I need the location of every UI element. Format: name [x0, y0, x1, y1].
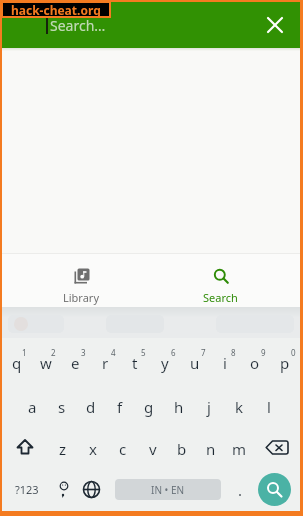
staticText: u	[190, 353, 200, 373]
button[interactable]: ?123	[2, 468, 51, 511]
button[interactable]: Search	[146, 254, 295, 307]
staticText: hack-cheat.org	[11, 2, 101, 18]
staticText: q	[12, 353, 22, 373]
staticText: 8	[231, 347, 236, 358]
staticText: l	[267, 397, 271, 417]
button[interactable]	[51, 468, 77, 511]
staticText: z	[59, 439, 67, 459]
button[interactable]: j	[194, 384, 224, 426]
staticText: f	[117, 397, 123, 417]
staticText: .	[238, 480, 243, 500]
staticText: n	[206, 439, 216, 459]
staticText: 7	[201, 347, 206, 358]
staticText: Library	[63, 290, 100, 305]
button[interactable]	[254, 426, 300, 468]
button[interactable]: s	[47, 384, 76, 426]
button[interactable]	[258, 473, 291, 506]
button[interactable]: n	[196, 426, 225, 468]
button[interactable]	[77, 468, 105, 511]
staticText: w	[40, 353, 52, 373]
staticText: k	[235, 397, 244, 417]
staticText: p	[280, 353, 290, 373]
staticText: 4	[111, 347, 116, 358]
button[interactable]: b	[167, 426, 196, 468]
button[interactable]: r	[90, 338, 120, 384]
staticText: d	[86, 397, 96, 417]
staticText: y	[161, 353, 169, 373]
button[interactable]: h	[164, 384, 194, 426]
staticText: t	[132, 353, 138, 373]
staticText: a	[28, 397, 37, 417]
staticText: m	[232, 439, 247, 459]
staticText: 5	[141, 347, 146, 358]
staticText: s	[58, 397, 66, 417]
button[interactable]: IN • EN	[115, 479, 221, 500]
button[interactable]	[267, 17, 283, 33]
staticText: x	[89, 439, 97, 459]
staticText: Search…	[50, 16, 106, 35]
staticText: v	[149, 439, 157, 459]
staticText: i	[223, 353, 227, 373]
button[interactable]: f	[105, 384, 134, 426]
staticText: e	[71, 353, 80, 373]
button[interactable]	[2, 426, 48, 468]
button[interactable]: c	[108, 426, 138, 468]
staticText: Search	[203, 290, 238, 305]
staticText: 1	[22, 347, 27, 358]
button[interactable]: q	[2, 338, 31, 384]
button[interactable]: v	[138, 426, 167, 468]
staticText: o	[250, 353, 260, 373]
staticText: j	[207, 397, 211, 417]
staticText: 2	[51, 347, 56, 358]
staticText: IN • EN	[151, 483, 185, 497]
button[interactable]: w	[31, 338, 60, 384]
button[interactable]: o	[240, 338, 270, 384]
button[interactable]: e	[60, 338, 90, 384]
staticText: r	[102, 353, 109, 373]
staticText: 9	[261, 347, 266, 358]
staticText: b	[177, 439, 187, 459]
button[interactable]: d	[76, 384, 105, 426]
button[interactable]: t	[120, 338, 150, 384]
button[interactable]: g	[134, 384, 164, 426]
button[interactable]: p	[270, 338, 300, 384]
staticText: 0	[291, 347, 296, 358]
button[interactable]: z	[48, 426, 78, 468]
button[interactable]: l	[254, 384, 284, 426]
staticText: ?123	[15, 482, 39, 497]
staticText: g	[144, 397, 154, 417]
button[interactable]: m	[225, 426, 254, 468]
staticText: 3	[81, 347, 86, 358]
button[interactable]: x	[78, 426, 108, 468]
button[interactable]: a	[18, 384, 47, 426]
button[interactable]: Library	[7, 254, 156, 307]
button[interactable]: .	[225, 468, 255, 511]
button[interactable]: i	[210, 338, 240, 384]
staticText: 6	[171, 347, 176, 358]
button[interactable]: u	[180, 338, 210, 384]
button[interactable]: k	[224, 384, 254, 426]
button[interactable]: y	[150, 338, 180, 384]
staticText: h	[174, 397, 184, 417]
staticText: c	[119, 439, 127, 459]
